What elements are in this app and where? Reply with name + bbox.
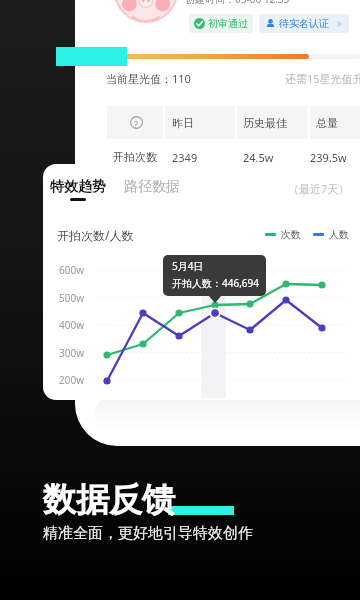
button[interactable]: 帮助 [130,116,143,129]
staticText: 24.5w [243,150,274,165]
staticText: 当前星光值：110 [106,71,191,86]
staticText: 开拍次数 [113,150,157,164]
staticText: 2349 [172,150,198,165]
staticText: 5月4日 [172,259,204,273]
staticText: 次数 [281,228,301,241]
staticText: 特效趋势 [50,178,106,196]
staticText: 精准全面，更好地引导特效创作 [43,524,253,543]
staticText: 创建时间：05-06 12:33 [185,0,290,6]
staticText: 数据反馈 [43,479,175,521]
staticText: 历史最佳 [243,116,287,130]
staticText: 初审通过 [208,17,248,30]
staticText: 300w [59,346,85,360]
button[interactable]: 特效趋势 [50,178,106,196]
staticText: 待实名认证 [279,17,329,30]
button[interactable]: 待实名认证 [259,14,349,33]
staticText: 人数 [329,228,349,241]
staticText: 200w [59,373,85,387]
staticText: 开拍次数/人数 [57,227,134,243]
staticText: 昨日 [172,116,194,130]
staticText: 总量 [316,116,338,130]
button[interactable]: 初审通过 [189,14,253,33]
staticText: 600w [59,263,85,277]
staticText: 400w [59,318,85,332]
staticText: 路径数据 [124,178,180,196]
staticText: ? [134,118,138,130]
staticText: 还需15星光值升级 [285,71,360,86]
staticText: 500w [59,291,85,305]
staticText: （最近7天） [288,181,350,196]
button[interactable]: 路径数据 [124,178,180,196]
staticText: 239.5w [310,150,347,165]
staticText: 开拍人数：446,694 [172,276,259,290]
